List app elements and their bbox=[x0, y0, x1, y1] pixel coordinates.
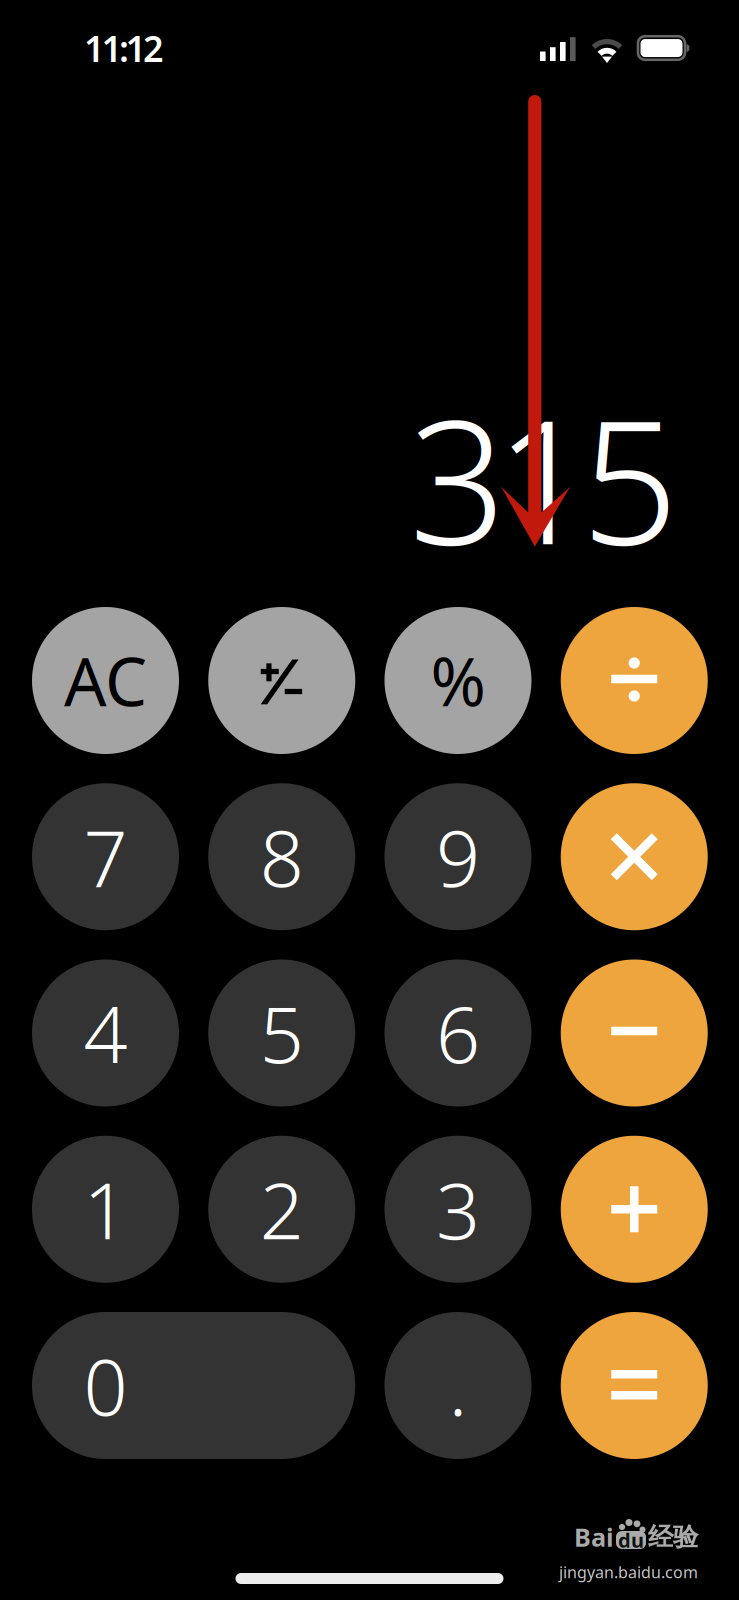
staticText: 6 bbox=[436, 982, 480, 1084]
staticText: 5 bbox=[260, 982, 304, 1084]
button[interactable]: 8 bbox=[208, 783, 355, 930]
staticText: 3 bbox=[436, 1158, 480, 1261]
button[interactable]: 4 bbox=[32, 959, 179, 1106]
button[interactable]: Divide bbox=[561, 607, 708, 754]
button[interactable]: Toggle sign bbox=[208, 607, 355, 754]
staticText: 9 bbox=[436, 805, 480, 908]
button[interactable]: Add bbox=[561, 1136, 708, 1283]
button[interactable]: 7 bbox=[32, 783, 179, 930]
staticText: du bbox=[618, 1527, 644, 1553]
button[interactable]: Multiply bbox=[561, 783, 708, 930]
button[interactable]: 2 bbox=[208, 1136, 355, 1283]
button[interactable]: 3 bbox=[384, 1136, 531, 1283]
button[interactable]: Equals bbox=[561, 1312, 708, 1459]
staticText: 315 bbox=[409, 365, 678, 591]
staticText: . bbox=[448, 1334, 467, 1437]
staticText: 2 bbox=[260, 1158, 304, 1261]
staticText: 4 bbox=[83, 982, 127, 1084]
button[interactable]: 1 bbox=[32, 1136, 179, 1283]
button[interactable]: . bbox=[384, 1312, 531, 1459]
staticText: % bbox=[430, 636, 485, 725]
staticText: jingyan.baidu.com bbox=[559, 1561, 698, 1583]
button[interactable]: AC bbox=[32, 607, 179, 754]
staticText: AC bbox=[64, 636, 147, 725]
button[interactable]: 9 bbox=[384, 783, 531, 930]
button[interactable]: 6 bbox=[384, 959, 531, 1106]
staticText: Bai bbox=[574, 1520, 614, 1554]
staticText: 1 bbox=[83, 1158, 127, 1261]
staticText: 7 bbox=[83, 805, 127, 908]
staticText: 11:12 bbox=[84, 24, 164, 72]
button[interactable]: % bbox=[384, 607, 531, 754]
button[interactable]: Subtract bbox=[561, 959, 708, 1106]
button[interactable]: 5 bbox=[208, 959, 355, 1106]
staticText: 0 bbox=[83, 1334, 127, 1437]
staticText: 经验 bbox=[648, 1521, 698, 1552]
button[interactable]: 0 bbox=[32, 1312, 355, 1459]
staticText: 8 bbox=[260, 805, 304, 908]
